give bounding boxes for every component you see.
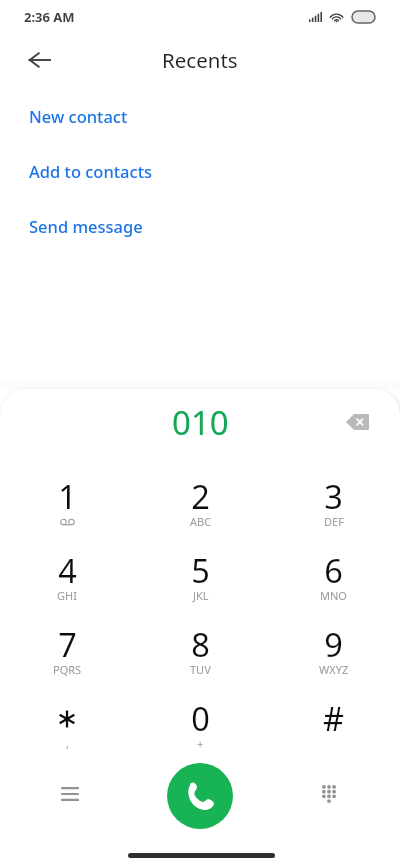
staticText: 010 <box>172 400 229 445</box>
staticText: + <box>197 736 204 751</box>
staticText: New contact <box>29 105 128 127</box>
staticText: 2 <box>191 474 210 518</box>
staticText: GHI <box>57 588 77 603</box>
staticText: WXYZ <box>319 662 349 677</box>
button[interactable]: 4 <box>0 541 134 615</box>
staticText: 8 <box>191 622 210 666</box>
button[interactable]: 7 <box>0 615 134 689</box>
staticText: 3 <box>324 474 343 518</box>
button[interactable]: Backspace <box>337 402 377 442</box>
button[interactable]: 1 <box>0 467 134 541</box>
staticText: # <box>323 696 344 740</box>
staticText: 7 <box>58 622 77 666</box>
button[interactable]: Call <box>167 763 233 829</box>
button[interactable]: Star <box>0 689 134 763</box>
button[interactable]: 9 <box>267 615 400 689</box>
button[interactable]: 0 <box>134 689 267 763</box>
staticText: 6 <box>324 548 343 592</box>
staticText: MNO <box>320 588 347 603</box>
staticText: Add to contacts <box>29 160 152 182</box>
button[interactable]: # <box>267 689 400 763</box>
button[interactable]: Call log <box>48 772 92 816</box>
staticText: DEF <box>324 514 344 529</box>
staticText: , <box>66 736 69 751</box>
staticText: 1 <box>58 474 77 518</box>
staticText: 4 <box>58 548 77 592</box>
button[interactable]: Add to contacts <box>0 140 400 195</box>
button[interactable]: 5 <box>134 541 267 615</box>
staticText: 5 <box>191 548 210 592</box>
button[interactable]: Dialpad <box>307 772 351 816</box>
button[interactable]: New contact <box>0 86 400 140</box>
button[interactable]: 2 <box>134 467 267 541</box>
button[interactable]: Back <box>18 39 60 81</box>
staticText: Recents <box>162 46 238 74</box>
staticText: PQRS <box>53 662 82 677</box>
staticText: Send message <box>29 215 143 237</box>
button[interactable]: 8 <box>134 615 267 689</box>
button[interactable]: 6 <box>267 541 400 615</box>
button[interactable]: 3 <box>267 467 400 541</box>
staticText: JKL <box>193 588 209 603</box>
staticText: 9 <box>324 622 343 666</box>
staticText: 2:36 AM <box>24 8 75 26</box>
button[interactable]: Send message <box>0 195 400 250</box>
staticText: TUV <box>190 662 211 677</box>
staticText: 0 <box>191 696 210 740</box>
staticText: ABC <box>190 514 212 529</box>
